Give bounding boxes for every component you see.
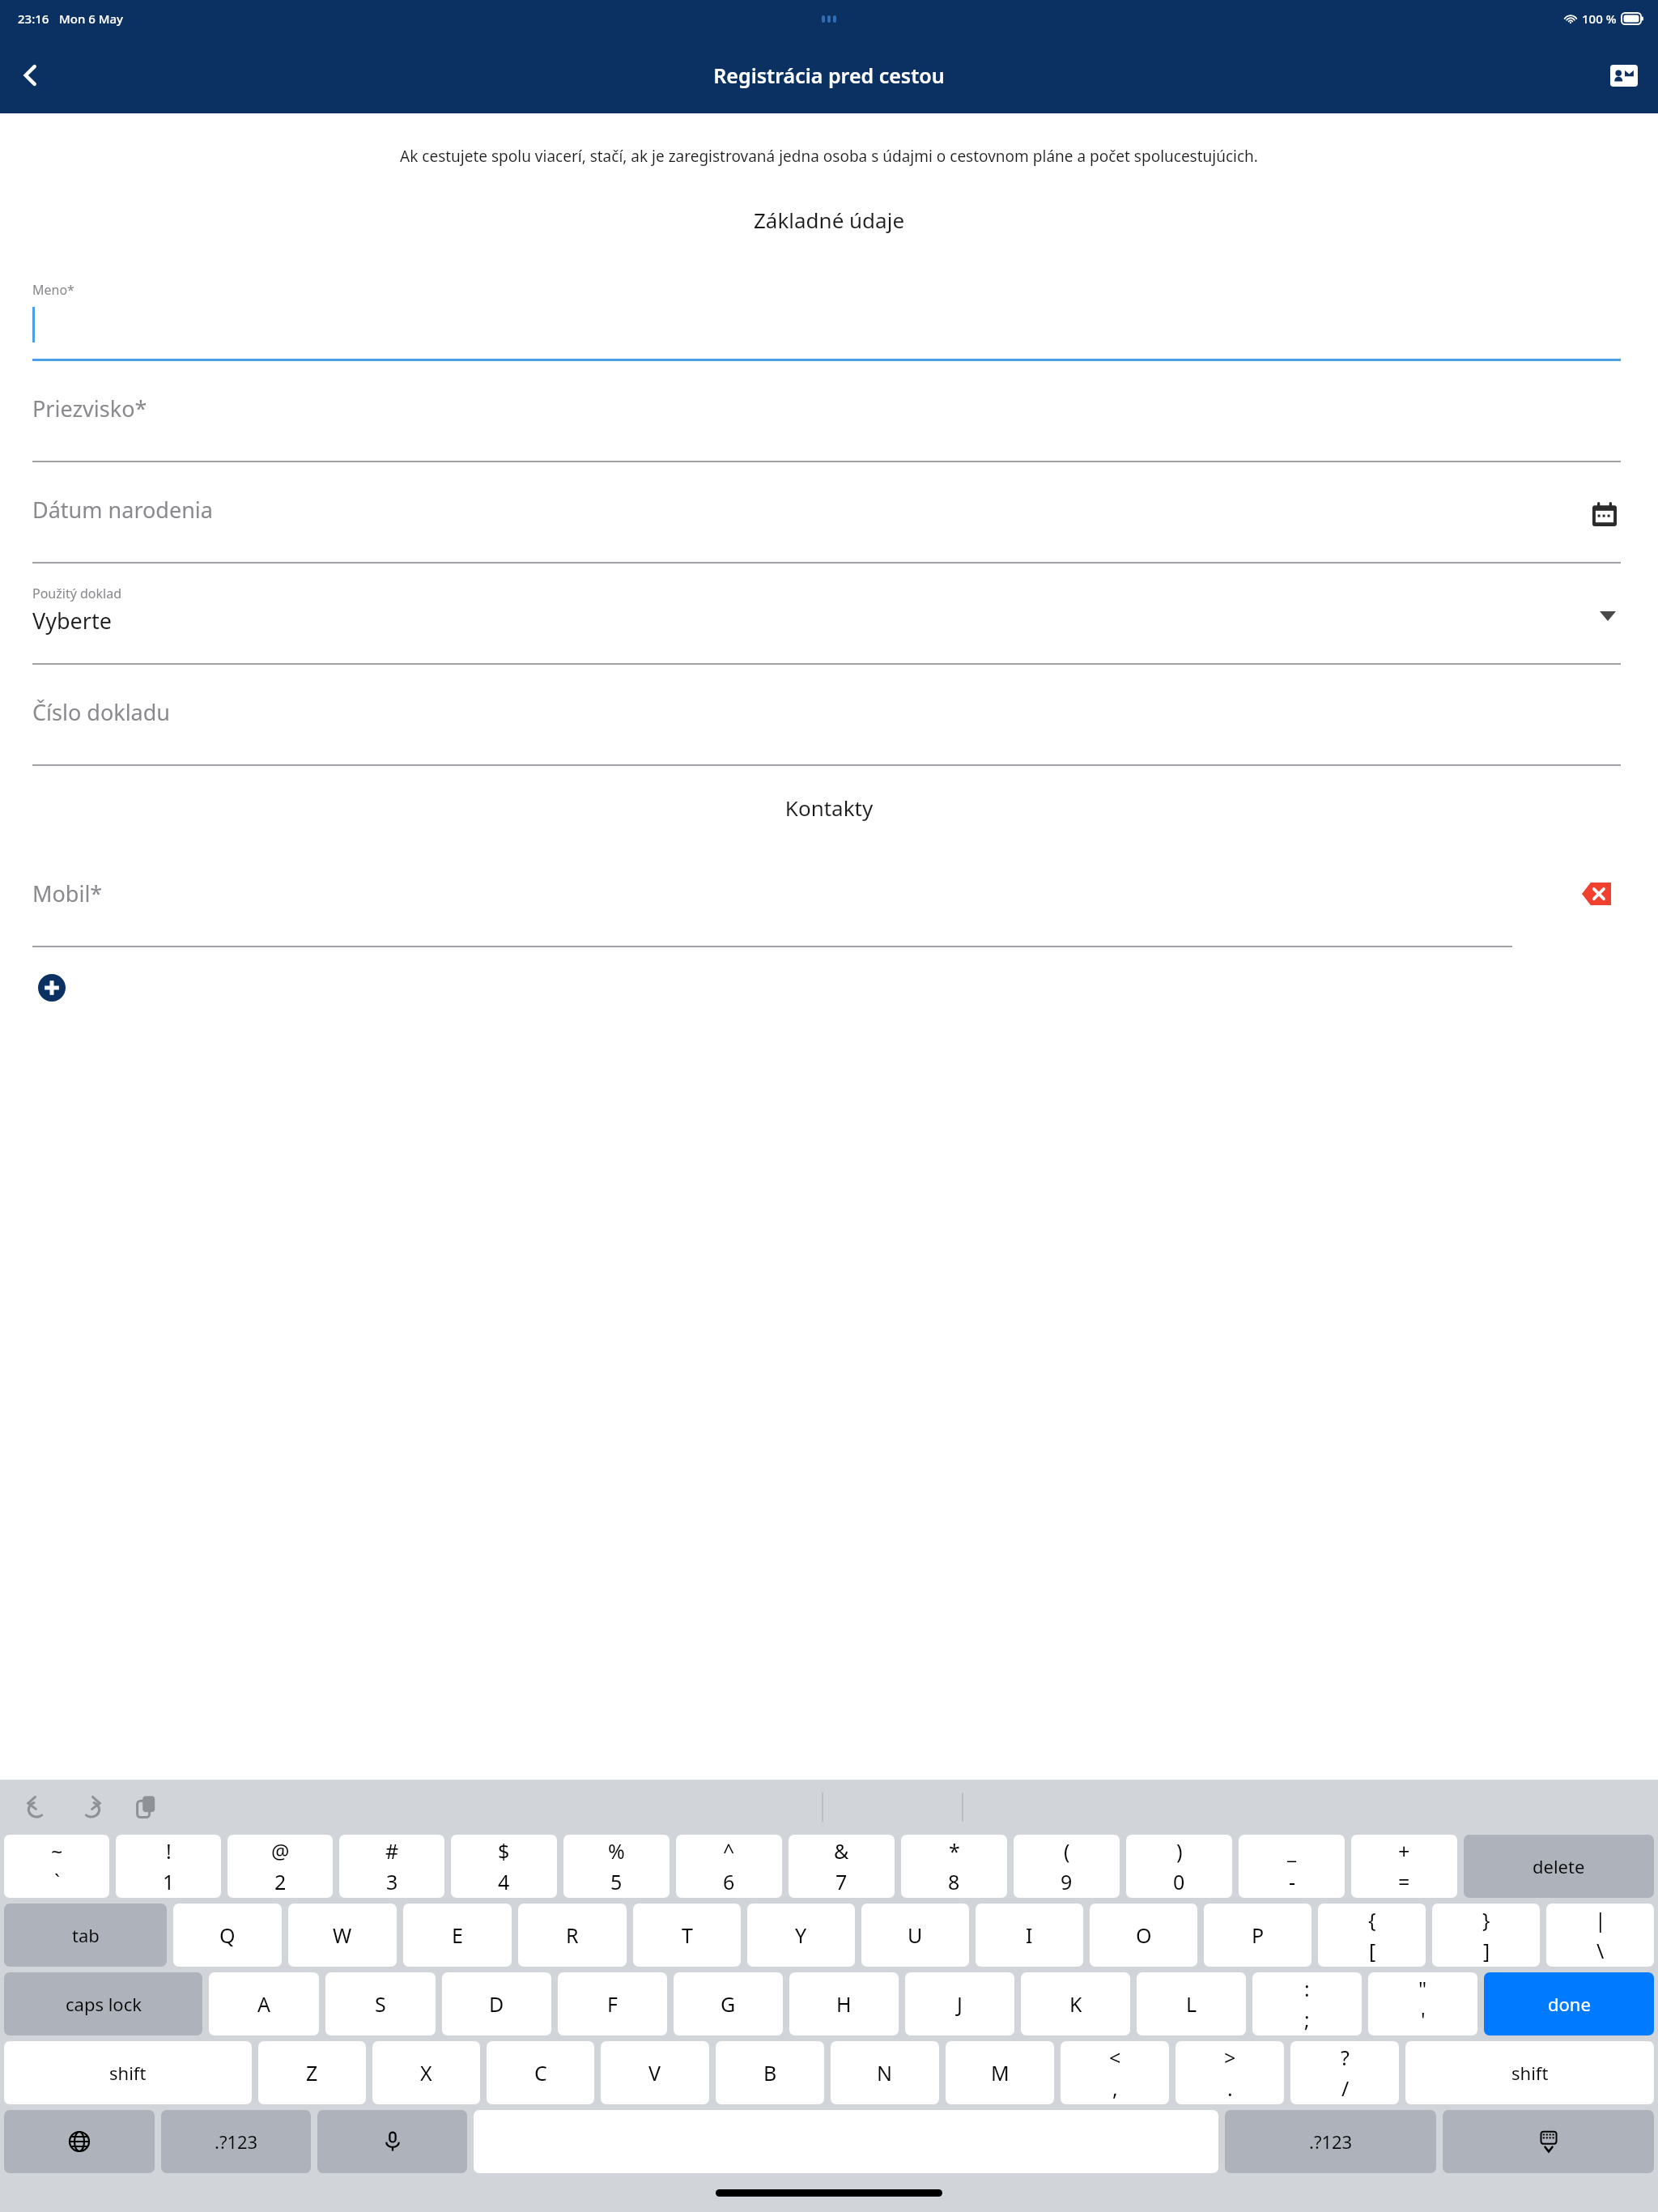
staticText: K <box>1069 1990 1082 2018</box>
staticText: F <box>607 1990 618 2018</box>
button[interactable]: $ <box>451 1835 557 1898</box>
button[interactable]: | <box>1546 1904 1654 1967</box>
button[interactable]: Hide keyboard <box>1443 2110 1654 2173</box>
button[interactable]: < <box>1061 2041 1169 2104</box>
staticText: 7 <box>835 1868 848 1895</box>
button[interactable]: Dátum narodenia <box>0 472 1658 573</box>
button[interactable]: N <box>831 2041 939 2104</box>
button[interactable]: S <box>325 1972 436 2035</box>
button[interactable]: ~ <box>4 1835 109 1898</box>
button[interactable]: .?123 <box>161 2110 311 2173</box>
button[interactable]: Q <box>173 1904 282 1967</box>
button[interactable]: Y <box>747 1904 855 1967</box>
staticText: / <box>1341 2074 1350 2102</box>
staticText: $ <box>498 1837 510 1865</box>
button[interactable]: Číslo dokladu <box>0 674 1658 776</box>
staticText: Y <box>795 1921 807 1949</box>
button[interactable]: B <box>716 2041 824 2104</box>
staticText: % <box>608 1837 625 1865</box>
staticText: C <box>534 2059 547 2087</box>
staticText: D <box>489 1990 504 2018</box>
staticText: tab <box>72 1923 100 1947</box>
button[interactable]: L <box>1137 1972 1246 2035</box>
button[interactable]: ! <box>116 1835 221 1898</box>
button[interactable]: : <box>1252 1972 1362 2035</box>
button[interactable]: # <box>339 1835 444 1898</box>
button[interactable]: A <box>209 1972 319 2035</box>
button[interactable]: shift <box>4 2041 252 2104</box>
button[interactable]: done <box>1484 1972 1654 2035</box>
button[interactable]: ? <box>1290 2041 1399 2104</box>
button[interactable]: Contacts <box>1600 51 1648 100</box>
button[interactable]: * <box>901 1835 1007 1898</box>
button[interactable]: Delete contact <box>1577 874 1616 913</box>
button[interactable]: Back <box>6 51 55 100</box>
staticText: shift <box>1511 2061 1549 2085</box>
staticText: J <box>957 1990 963 2018</box>
button[interactable]: Pick date <box>1584 493 1626 535</box>
button[interactable]: H <box>789 1972 899 2035</box>
staticText: Priezvisko* <box>32 393 147 423</box>
button[interactable]: ) <box>1126 1835 1232 1898</box>
button[interactable]: Undo <box>18 1789 55 1826</box>
button[interactable]: .?123 <box>1225 2110 1436 2173</box>
button[interactable]: % <box>563 1835 670 1898</box>
staticText: . <box>1227 2074 1233 2102</box>
button[interactable]: & <box>789 1835 895 1898</box>
button[interactable]: T <box>633 1904 741 1967</box>
button[interactable]: Redo <box>73 1789 110 1826</box>
button[interactable]: Priezvisko* <box>0 371 1658 472</box>
button[interactable]: D <box>442 1972 551 2035</box>
button[interactable]: Meno* <box>0 270 1658 371</box>
staticText: H <box>836 1990 852 2018</box>
button[interactable]: > <box>1175 2041 1284 2104</box>
button[interactable]: Expand <box>1592 600 1624 632</box>
staticText: ] <box>1483 1937 1490 1964</box>
button[interactable]: F <box>558 1972 667 2035</box>
button[interactable]: @ <box>227 1835 333 1898</box>
button[interactable]: K <box>1021 1972 1130 2035</box>
staticText: , <box>1112 2074 1118 2102</box>
button[interactable]: Použitý doklad <box>0 573 1658 674</box>
button[interactable]: I <box>976 1904 1083 1967</box>
staticText: 0 <box>1173 1868 1185 1895</box>
button[interactable]: U <box>861 1904 969 1967</box>
button[interactable]: W <box>288 1904 397 1967</box>
button[interactable]: R <box>518 1904 627 1967</box>
button[interactable]: Add contact <box>32 968 71 1007</box>
button[interactable]: Globe <box>4 2110 155 2173</box>
button[interactable]: M <box>946 2041 1054 2104</box>
button[interactable]: C <box>487 2041 594 2104</box>
staticText: - <box>1289 1868 1296 1895</box>
button[interactable]: P <box>1204 1904 1312 1967</box>
staticText: ^ <box>723 1837 735 1865</box>
button[interactable]: delete <box>1464 1835 1654 1898</box>
button[interactable]: Z <box>258 2041 366 2104</box>
button[interactable]: ( <box>1014 1835 1120 1898</box>
button[interactable]: Mobil* <box>0 856 1658 957</box>
button[interactable]: J <box>905 1972 1014 2035</box>
button[interactable]: E <box>403 1904 512 1967</box>
staticText: | <box>1595 1906 1606 1933</box>
staticText: Základné údaje <box>0 206 1658 234</box>
button[interactable]: " <box>1368 1972 1477 2035</box>
button[interactable]: shift <box>1405 2041 1654 2104</box>
button[interactable]: + <box>1351 1835 1457 1898</box>
button[interactable]: V <box>601 2041 709 2104</box>
staticText: { <box>1368 1906 1376 1933</box>
button[interactable]: G <box>674 1972 783 2035</box>
button[interactable]: caps lock <box>4 1972 202 2035</box>
button[interactable]: tab <box>4 1904 167 1967</box>
button[interactable]: } <box>1432 1904 1540 1967</box>
button[interactable]: _ <box>1239 1835 1345 1898</box>
button[interactable]: O <box>1090 1904 1197 1967</box>
button[interactable]: X <box>372 2041 480 2104</box>
staticText: done <box>1548 1992 1591 2016</box>
staticText: # <box>385 1837 399 1865</box>
button[interactable]: Paste <box>128 1789 165 1826</box>
button[interactable]: Dictate <box>317 2110 467 2173</box>
button[interactable]: ^ <box>676 1835 782 1898</box>
staticText: S <box>375 1990 386 2018</box>
button[interactable]: { <box>1318 1904 1426 1967</box>
